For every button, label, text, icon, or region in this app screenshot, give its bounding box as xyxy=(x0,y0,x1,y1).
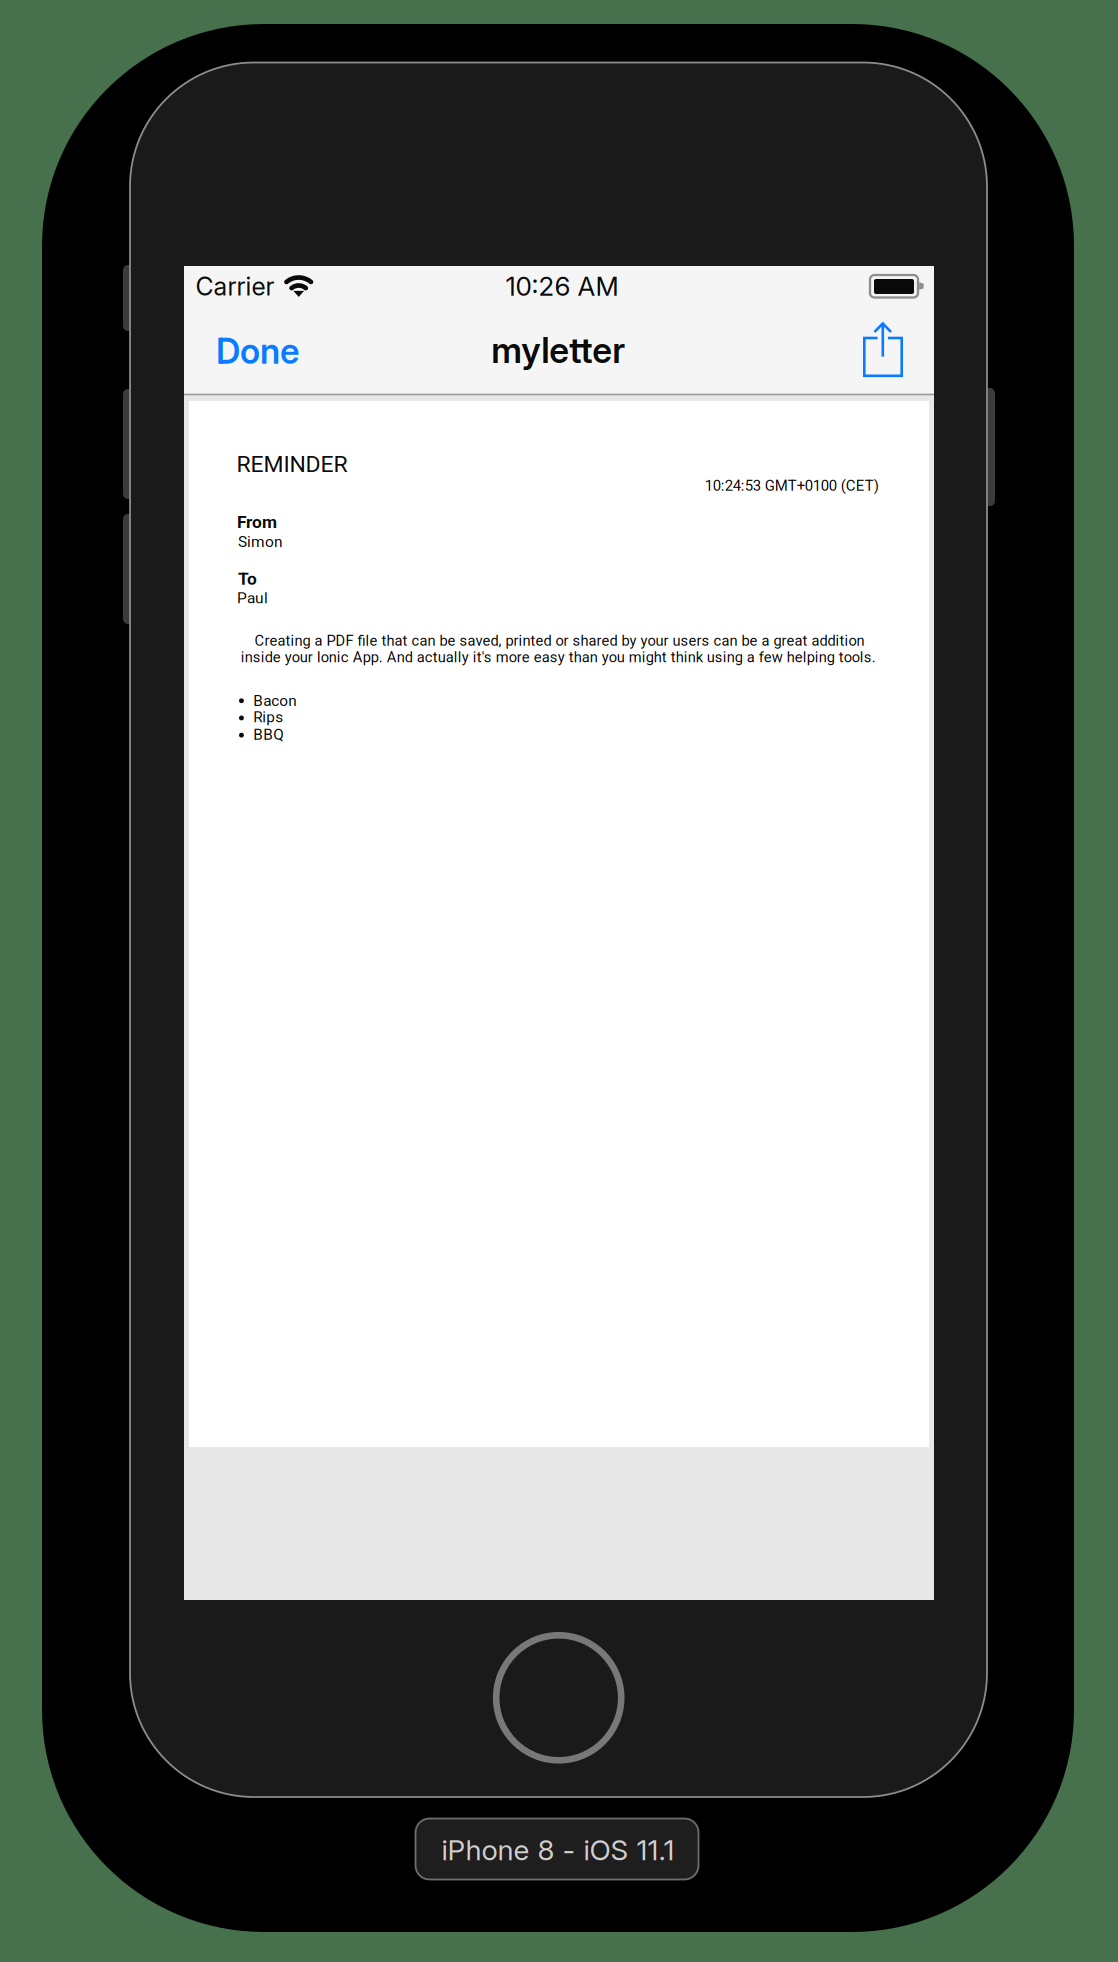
button[interactable]: Share xyxy=(854,306,916,394)
staticText: Bacon xyxy=(253,692,296,710)
staticText: iPhone 8 - iOS 11.1 xyxy=(441,1833,674,1867)
staticText: myletter xyxy=(491,329,625,371)
staticText: Carrier xyxy=(196,272,275,302)
button[interactable]: Done xyxy=(206,306,316,394)
staticText: BBQ xyxy=(253,726,284,744)
staticText: Paul xyxy=(237,589,268,607)
staticText: 10:26 AM xyxy=(506,270,619,302)
staticText: Done xyxy=(216,330,299,372)
staticText: Simon xyxy=(238,533,283,551)
staticText: From xyxy=(237,512,277,532)
staticText: 10:24:53 GMT+0100 (CET) xyxy=(705,477,879,494)
staticText: To xyxy=(238,569,257,589)
staticText: Creating a PDF file that can be saved, p… xyxy=(254,632,864,649)
staticText: REMINDER xyxy=(237,451,348,478)
staticText: inside your Ionic App. And actually it's… xyxy=(241,649,876,666)
staticText: Rips xyxy=(253,708,283,726)
